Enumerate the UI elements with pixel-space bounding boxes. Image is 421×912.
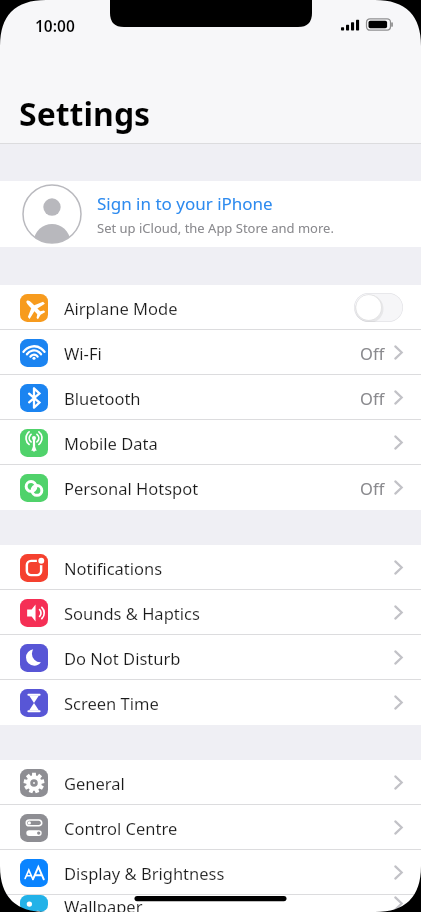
button[interactable]: Airplane Mode, off (354, 293, 403, 322)
staticText: Sounds & Haptics (64, 602, 200, 624)
button[interactable]: Sounds & Haptics (0, 590, 421, 635)
button[interactable]: Notifications (0, 545, 421, 590)
button[interactable]: Sign in to your iPhone (0, 181, 421, 247)
button[interactable]: General (0, 760, 421, 805)
staticText: Control Centre (64, 817, 178, 839)
button[interactable]: Wallpaper (0, 895, 421, 912)
staticText: Screen Time (64, 692, 159, 714)
button[interactable]: Do Not Disturb (0, 635, 421, 680)
staticText: Mobile Data (64, 432, 158, 454)
staticText: General (64, 772, 125, 794)
button[interactable]: Control Centre (0, 805, 421, 850)
staticText: Do Not Disturb (64, 647, 181, 669)
staticText: Airplane Mode (64, 297, 178, 319)
staticText: Off (360, 477, 385, 499)
staticText: Display & Brightness (64, 862, 225, 884)
button[interactable]: Personal Hotspot (0, 465, 421, 510)
staticText: Set up iCloud, the App Store and more. (97, 219, 334, 237)
staticText: Notifications (64, 557, 163, 579)
staticText: Personal Hotspot (64, 477, 199, 499)
button[interactable]: Airplane Mode (0, 285, 421, 330)
staticText: Wi-Fi (64, 342, 102, 364)
staticText: Off (360, 342, 385, 364)
staticText: 10:00 (35, 15, 75, 36)
staticText: Off (360, 387, 385, 409)
staticText: Bluetooth (64, 387, 141, 409)
button[interactable]: Mobile Data (0, 420, 421, 465)
button[interactable]: Wi-Fi (0, 330, 421, 375)
button[interactable]: Bluetooth (0, 375, 421, 420)
button[interactable]: Display & Brightness (0, 850, 421, 895)
button[interactable]: Screen Time (0, 680, 421, 725)
staticText: Sign in to your iPhone (97, 192, 273, 215)
staticText: Wallpaper (64, 895, 143, 912)
staticText: Settings (19, 92, 151, 136)
